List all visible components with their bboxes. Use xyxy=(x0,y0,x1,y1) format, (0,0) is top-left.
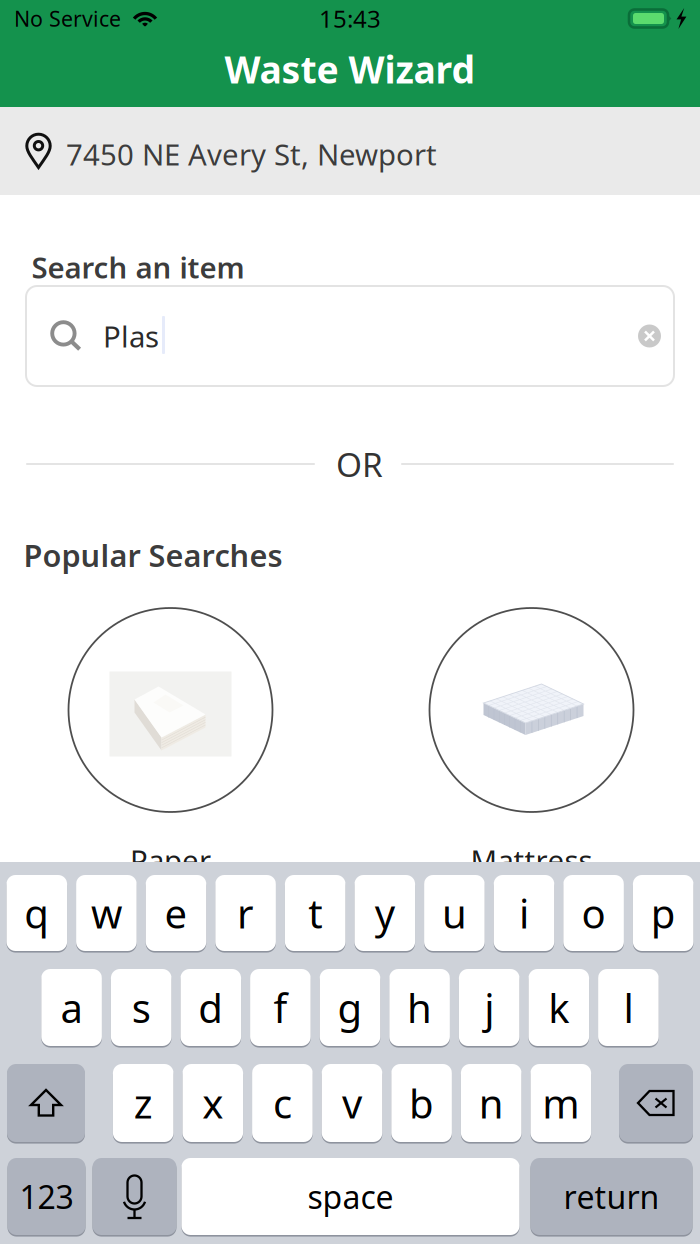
staticText: n xyxy=(479,1076,504,1129)
button[interactable]: h xyxy=(389,969,450,1046)
staticText: No Service xyxy=(14,4,121,33)
staticText: Popular Searches xyxy=(23,535,282,575)
staticText: y xyxy=(375,886,395,939)
staticText: 123 xyxy=(19,1175,73,1218)
staticText: Search an item xyxy=(31,247,244,286)
button[interactable]: r xyxy=(215,875,276,951)
button[interactable]: q xyxy=(6,875,67,951)
button[interactable]: Dictate xyxy=(92,1158,176,1235)
staticText: x xyxy=(202,1076,223,1129)
button[interactable]: n xyxy=(461,1064,521,1142)
button[interactable]: i xyxy=(494,875,554,951)
button[interactable]: c xyxy=(252,1064,313,1142)
staticText: u xyxy=(442,886,467,939)
staticText: c xyxy=(273,1076,292,1129)
button[interactable]: b xyxy=(391,1064,452,1142)
staticText: j xyxy=(484,981,494,1034)
button[interactable]: Delete xyxy=(619,1064,693,1142)
staticText: v xyxy=(342,1076,362,1129)
staticText: h xyxy=(407,981,432,1034)
staticText: g xyxy=(337,981,362,1034)
staticText: return xyxy=(563,1175,659,1218)
staticText: a xyxy=(61,981,83,1034)
button[interactable]: f xyxy=(250,969,311,1046)
button[interactable]: w xyxy=(76,875,137,951)
staticText: w xyxy=(91,886,122,939)
button[interactable]: p xyxy=(633,875,693,951)
staticText: OR xyxy=(336,442,383,486)
button[interactable]: m xyxy=(530,1064,591,1142)
staticText: Plas xyxy=(103,316,159,355)
button[interactable]: a xyxy=(41,969,102,1046)
button[interactable]: y xyxy=(354,875,415,951)
staticText: o xyxy=(582,886,606,939)
button[interactable]: z xyxy=(113,1064,173,1142)
button[interactable]: t xyxy=(285,875,345,951)
button[interactable]: return xyxy=(530,1158,692,1235)
button[interactable]: l xyxy=(598,969,659,1046)
staticText: k xyxy=(548,981,569,1034)
staticText: Mattress xyxy=(470,840,592,879)
button[interactable]: Mattress xyxy=(421,605,641,875)
button[interactable]: 7450 NE Avery St, Newport xyxy=(0,107,700,195)
staticText: p xyxy=(651,886,676,939)
button[interactable]: v xyxy=(322,1064,382,1142)
button[interactable]: 123 xyxy=(7,1158,85,1235)
staticText: 15:43 xyxy=(319,3,381,34)
staticText: l xyxy=(623,981,633,1034)
button[interactable]: j xyxy=(459,969,519,1046)
staticText: Paper xyxy=(130,840,211,879)
staticText: f xyxy=(273,981,287,1034)
button[interactable]: d xyxy=(180,969,241,1046)
staticText: q xyxy=(24,886,49,939)
button[interactable]: Paper xyxy=(60,605,280,875)
staticText: i xyxy=(519,886,529,939)
button[interactable]: k xyxy=(528,969,589,1046)
button[interactable]: u xyxy=(424,875,485,951)
button[interactable]: Shift xyxy=(7,1064,85,1142)
staticText: t xyxy=(308,886,322,939)
button[interactable]: g xyxy=(320,969,380,1046)
staticText: r xyxy=(237,886,254,939)
button[interactable]: x xyxy=(182,1064,243,1142)
staticText: z xyxy=(134,1076,153,1129)
staticText: d xyxy=(198,981,223,1034)
staticText: e xyxy=(164,886,187,939)
button[interactable]: Plas xyxy=(26,286,674,386)
button[interactable]: o xyxy=(563,875,624,951)
staticText: Waste Wizard xyxy=(224,44,475,94)
staticText: m xyxy=(542,1076,579,1129)
button[interactable]: space xyxy=(181,1158,519,1235)
staticText: space xyxy=(307,1175,393,1218)
button[interactable]: e xyxy=(146,875,206,951)
staticText: b xyxy=(409,1076,434,1129)
staticText: 7450 NE Avery St, Newport xyxy=(66,134,437,173)
staticText: s xyxy=(132,981,151,1034)
button[interactable]: s xyxy=(111,969,171,1046)
